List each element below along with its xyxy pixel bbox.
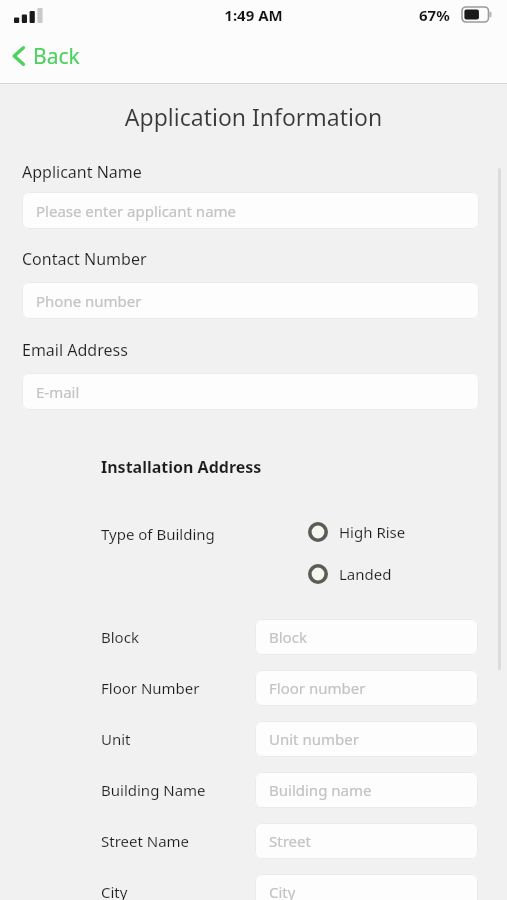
staticText: Installation Address (101, 456, 262, 478)
staticText: Please enter applicant name (36, 201, 237, 221)
staticText: Block (101, 627, 139, 647)
staticText: Back (33, 42, 80, 71)
staticText: Applicant Name (22, 161, 142, 183)
staticText: Building Name (101, 780, 206, 800)
button[interactable]: E-mail (22, 373, 479, 410)
staticText: 1:49 AM (0, 5, 507, 25)
staticText: Email Address (22, 339, 128, 361)
button[interactable]: Please enter applicant name (22, 192, 479, 229)
staticText: Application Information (0, 101, 507, 132)
staticText: Block (269, 627, 307, 647)
button[interactable]: Back (8, 38, 108, 74)
staticText: Landed (339, 564, 392, 584)
staticText: Type of Building (101, 524, 215, 544)
staticText: City (269, 882, 296, 900)
staticText: High Rise (339, 522, 406, 542)
button[interactable]: Street (255, 823, 478, 859)
staticText: City (101, 882, 128, 900)
staticText: Unit (101, 729, 131, 749)
button[interactable]: Phone number (22, 282, 479, 319)
staticText: E-mail (36, 382, 80, 402)
button[interactable]: Building name (255, 772, 478, 808)
button[interactable]: Landed (307, 559, 477, 589)
staticText: Contact Number (22, 248, 147, 270)
button[interactable]: High Rise (307, 517, 477, 547)
button[interactable]: Unit number (255, 721, 478, 757)
button[interactable]: Floor number (255, 670, 478, 706)
staticText: Phone number (36, 291, 142, 311)
staticText: Unit number (269, 729, 359, 749)
staticText: Street (269, 831, 311, 851)
staticText: Floor number (269, 678, 366, 698)
button[interactable]: Block (255, 619, 478, 655)
staticText: Street Name (101, 831, 190, 851)
staticText: 67% (419, 5, 450, 25)
staticText: Building name (269, 780, 372, 800)
button[interactable]: City (255, 874, 478, 900)
staticText: Floor Number (101, 678, 200, 698)
